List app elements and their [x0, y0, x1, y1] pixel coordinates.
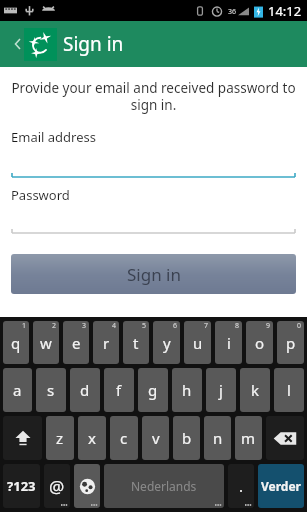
staticText: v [152, 428, 160, 448]
button[interactable]: h [172, 368, 202, 412]
staticText: k [251, 380, 260, 400]
button[interactable] [11, 204, 296, 234]
button[interactable]: f [104, 368, 134, 412]
staticText: Password [11, 186, 70, 204]
staticText: Provide your email and received password… [11, 79, 296, 114]
button[interactable]: Back [0, 21, 307, 67]
button[interactable]: Backspace [266, 416, 304, 460]
button[interactable]: Verder [258, 464, 304, 508]
button[interactable]: o [246, 321, 273, 364]
button[interactable]: n [204, 416, 231, 460]
button[interactable]: y [153, 321, 180, 364]
button[interactable]: Nederlands [104, 464, 224, 508]
staticText: 0 [297, 321, 302, 331]
button[interactable]: @ [44, 464, 70, 508]
staticText: 3 [82, 321, 87, 331]
button[interactable]: Change language [74, 464, 100, 508]
button[interactable]: d [70, 368, 100, 412]
staticText: h [182, 380, 192, 400]
button[interactable]: m [235, 416, 262, 460]
staticText: t [133, 333, 139, 353]
button[interactable]: t [123, 321, 149, 364]
staticText: 5 [142, 321, 147, 331]
staticText: 8 [235, 321, 240, 331]
staticText: y [163, 333, 171, 353]
button[interactable]: k [240, 368, 270, 412]
staticText: g [148, 380, 158, 400]
button[interactable]: b [173, 416, 200, 460]
button[interactable]: a [3, 368, 32, 412]
button[interactable]: s [36, 368, 66, 412]
staticText: p [286, 333, 296, 353]
button[interactable]: w [33, 321, 59, 364]
staticText: z [56, 428, 64, 448]
button[interactable]: l [274, 368, 304, 412]
button[interactable]: p [277, 321, 304, 364]
staticText: d [80, 380, 90, 400]
staticText: e [72, 333, 81, 353]
staticText: o [255, 333, 265, 353]
staticText: l [287, 380, 291, 400]
staticText: Nederlands [131, 478, 197, 494]
other: Back [3, 29, 33, 59]
staticText: q [11, 333, 21, 353]
staticText: s [47, 380, 55, 400]
staticText: i [227, 333, 231, 353]
staticText: 1 [22, 321, 27, 331]
staticText: j [219, 380, 223, 400]
button[interactable]: r [93, 321, 119, 364]
staticText: 14:12 [268, 2, 302, 20]
staticText: m [241, 428, 256, 448]
staticText: . [239, 476, 244, 496]
button[interactable]: u [184, 321, 211, 364]
button[interactable]: x [78, 416, 106, 460]
staticText: x [88, 428, 96, 448]
button[interactable]: Shift [3, 416, 42, 460]
button[interactable]: v [142, 416, 169, 460]
staticText: n [213, 428, 223, 448]
staticText: 36 [228, 7, 237, 17]
button[interactable]: z [46, 416, 74, 460]
staticText: 6 [173, 321, 178, 331]
staticText: w [40, 333, 52, 353]
staticText: Sign in [127, 263, 181, 286]
staticText: Sign in [63, 31, 124, 57]
staticText: r [103, 333, 110, 353]
staticText: 9 [266, 321, 271, 331]
staticText: 4 [112, 321, 117, 331]
staticText: 7 [204, 321, 209, 331]
staticText: Email address [11, 128, 96, 146]
staticText: b [182, 428, 192, 448]
button[interactable] [11, 146, 296, 178]
staticText: u [193, 333, 203, 353]
button[interactable]: q [3, 321, 29, 364]
button[interactable]: . [228, 464, 254, 508]
staticText: Verder [261, 478, 301, 494]
button[interactable]: e [63, 321, 89, 364]
staticText: c [120, 428, 128, 448]
staticText: a [13, 380, 22, 400]
staticText: ?123 [7, 477, 36, 495]
staticText: 2 [52, 321, 57, 331]
button[interactable]: i [215, 321, 242, 364]
staticText: @ [49, 475, 65, 498]
button[interactable]: ?123 [3, 464, 40, 508]
staticText: f [116, 380, 122, 400]
button[interactable]: g [138, 368, 168, 412]
button[interactable]: Sign in [11, 254, 296, 294]
button[interactable]: j [206, 368, 236, 412]
button[interactable]: c [110, 416, 138, 460]
